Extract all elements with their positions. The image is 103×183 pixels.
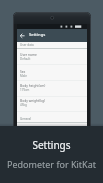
staticText: User name xyxy=(20,52,37,56)
staticText: General xyxy=(20,117,32,121)
staticText: Body weight(kg) xyxy=(20,98,46,102)
staticText: Body height(cm) xyxy=(20,83,46,87)
staticText: Sex xyxy=(20,69,26,73)
staticText: Pedometer for KitKat xyxy=(0,158,103,170)
staticText: Settings xyxy=(0,138,103,152)
staticText: User data xyxy=(20,43,34,47)
button[interactable] xyxy=(17,50,87,63)
button[interactable] xyxy=(17,81,87,95)
button[interactable]: Settings xyxy=(17,29,87,42)
staticText: Default xyxy=(20,57,31,61)
button[interactable] xyxy=(17,66,87,79)
staticText: Male xyxy=(20,74,27,78)
button[interactable] xyxy=(17,96,87,110)
staticText: Settings xyxy=(29,32,46,38)
staticText: 175cm xyxy=(20,88,30,92)
staticText: 45kg xyxy=(20,103,27,107)
